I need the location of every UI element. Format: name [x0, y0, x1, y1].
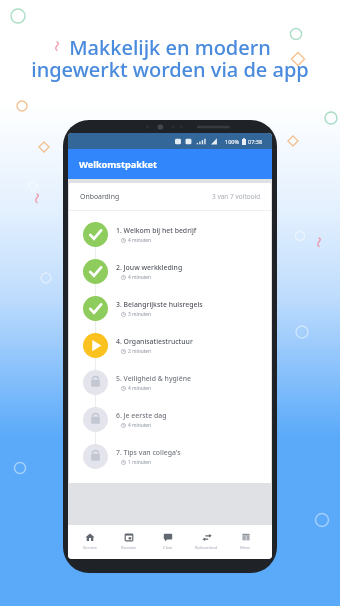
staticText: Meer — [240, 545, 251, 551]
staticText: 4 minuten — [128, 422, 152, 429]
staticText: 07:38 — [248, 138, 263, 145]
button[interactable]: Rooster — [109, 532, 148, 551]
staticText: Onboarding — [80, 192, 120, 201]
staticText: 2 minuten — [128, 348, 152, 355]
button[interactable]: Ruilaanbod — [187, 532, 226, 551]
staticText: Welkomstpakket — [79, 158, 158, 171]
staticText: 4 minuten — [128, 237, 152, 244]
staticText: 3. Belangrijkste huisregels — [116, 300, 203, 309]
staticText: Service — [83, 545, 97, 551]
button[interactable]: 5. Veiligheid & hygiëne — [69, 364, 271, 401]
staticText: 3 minuten — [128, 311, 152, 318]
staticText: 5. Veiligheid & hygiëne — [116, 374, 191, 383]
staticText: 7. Tips van collega's — [116, 448, 181, 457]
staticText: 4. Organisatiestructuur — [116, 337, 193, 346]
button[interactable]: 1. Welkom bij het bedrijf — [69, 216, 271, 253]
staticText: Chat — [163, 545, 173, 551]
staticText: Rooster — [121, 545, 137, 551]
staticText: 2. Jouw werkkleding — [116, 263, 183, 272]
staticText: 4 minuten — [128, 274, 152, 281]
staticText: 1 minuten — [128, 459, 152, 466]
button[interactable]: Service — [70, 532, 109, 551]
staticText: Makkelijk en modern ingewerkt worden via… — [0, 34, 340, 83]
button[interactable]: 2. Jouw werkkleding — [69, 253, 271, 290]
staticText: 100% — [225, 138, 240, 145]
staticText: 1. Welkom bij het bedrijf — [116, 226, 197, 235]
button[interactable]: 4. Organisatiestructuur — [69, 327, 271, 364]
staticText: 4 minuten — [128, 385, 152, 392]
staticText: 3 van 7 voltooid — [212, 192, 261, 201]
button[interactable]: 3. Belangrijkste huisregels — [69, 290, 271, 327]
button[interactable]: Meer — [226, 532, 265, 551]
staticText: 6. Je eerste dag — [116, 411, 167, 420]
button[interactable]: 7. Tips van collega's — [69, 438, 271, 475]
staticText: Ruilaanbod — [195, 545, 218, 551]
button[interactable]: 6. Je eerste dag — [69, 401, 271, 438]
button[interactable]: Chat — [148, 532, 187, 551]
